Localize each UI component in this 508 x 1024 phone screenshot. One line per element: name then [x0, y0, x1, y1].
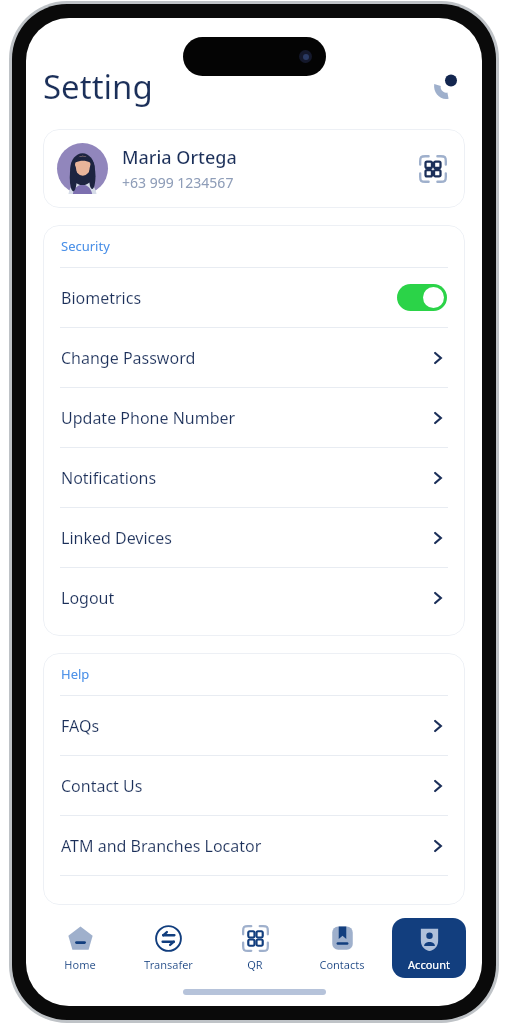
button[interactable]: ATM and Branches Locator — [43, 816, 465, 875]
button[interactable]: Update Phone Number — [43, 388, 465, 447]
button[interactable]: Contacts — [305, 918, 379, 978]
staticText: Notifications — [61, 467, 157, 489]
staticText: QR — [247, 957, 263, 972]
staticText: Contacts — [319, 957, 365, 972]
button[interactable]: Logout — [43, 568, 465, 627]
button[interactable]: Show my QR code — [415, 151, 451, 187]
button[interactable]: FAQs — [43, 696, 465, 755]
staticText: Update Phone Number — [61, 407, 236, 429]
staticText: FAQs — [61, 715, 100, 737]
staticText: ATM and Branches Locator — [61, 835, 262, 857]
button[interactable]: QR — [218, 918, 292, 978]
staticText: Logout — [61, 587, 115, 609]
button[interactable]: Linked Devices — [43, 508, 465, 567]
staticText: Linked Devices — [61, 527, 172, 549]
button[interactable]: Notifications — [43, 448, 465, 507]
staticText: Account — [408, 957, 450, 972]
staticText: Biometrics — [61, 287, 142, 309]
staticText: Security — [61, 237, 110, 255]
staticText: Setting — [43, 64, 153, 109]
button[interactable]: Change Password — [43, 328, 465, 387]
staticText: +63 999 1234567 — [122, 173, 234, 192]
staticText: Transafer — [144, 957, 193, 972]
button[interactable]: Contact Us — [43, 756, 465, 815]
button[interactable]: Call support — [425, 67, 465, 107]
button[interactable]: Biometrics — [43, 268, 465, 327]
staticText: Maria Ortega — [122, 145, 237, 170]
staticText: Home — [64, 957, 96, 972]
staticText: Contact Us — [61, 775, 143, 797]
button[interactable]: Home — [43, 918, 117, 978]
button[interactable]: Account — [392, 918, 466, 978]
staticText: Help — [61, 665, 90, 683]
button[interactable]: Transafer — [131, 918, 205, 978]
staticText: Change Password — [61, 347, 196, 369]
